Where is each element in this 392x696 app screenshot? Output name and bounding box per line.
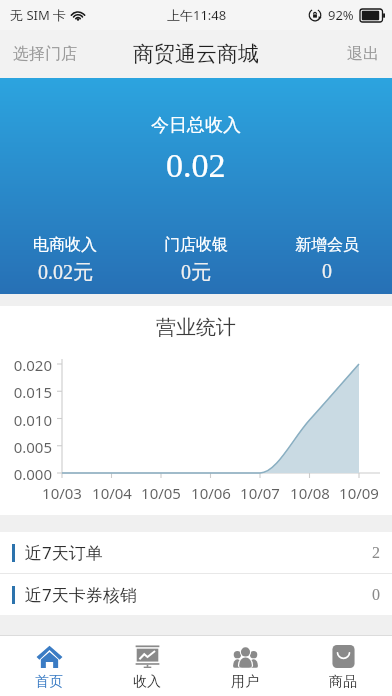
staticText: 收入 — [133, 673, 161, 691]
staticText: 近7天卡券核销 — [25, 583, 137, 606]
staticText: 营业统计 — [0, 315, 392, 340]
staticText: 今日总收入 — [151, 114, 241, 137]
staticText: 2 — [372, 544, 380, 562]
staticText: 0.000 — [0, 464, 52, 484]
button[interactable]: Home — [0, 636, 98, 696]
staticText: 0.005 — [0, 437, 52, 457]
staticText: 92% — [328, 6, 354, 24]
button[interactable]: Products — [294, 636, 392, 696]
button[interactable]: 门店收银 — [130, 235, 261, 285]
staticText: 商贸通云商城 — [133, 41, 259, 67]
staticText: 10/06 — [186, 483, 236, 503]
staticText: 无 SIM 卡 — [10, 6, 67, 24]
staticText: 电商收入 — [33, 235, 97, 255]
staticText: 0.020 — [0, 355, 52, 375]
staticText: 新增会员 — [295, 235, 359, 255]
staticText: 10/08 — [285, 483, 335, 503]
staticText: 10/07 — [235, 483, 285, 503]
staticText: 10/09 — [334, 483, 384, 503]
staticText: 0.02元 — [38, 260, 93, 285]
button[interactable]: 新增会员 — [261, 235, 392, 282]
staticText: 10/05 — [136, 483, 186, 503]
staticText: 首页 — [35, 673, 63, 691]
staticText: 0 — [372, 586, 380, 604]
staticText: 0 — [322, 260, 332, 282]
staticText: 商品 — [329, 673, 357, 691]
staticText: 10/03 — [37, 483, 87, 503]
button[interactable]: 选择门店 — [0, 34, 90, 74]
staticText: 上午11:48 — [167, 6, 227, 24]
button[interactable]: Users — [196, 636, 294, 696]
staticText: 0元 — [181, 260, 211, 285]
button[interactable]: 电商收入 — [0, 235, 130, 285]
staticText: 10/04 — [87, 483, 137, 503]
staticText: 用户 — [231, 673, 259, 691]
staticText: 近7天订单 — [25, 541, 103, 564]
staticText: 0.015 — [0, 382, 52, 402]
button[interactable]: 近7天订单 — [0, 532, 392, 573]
staticText: 0.02 — [166, 147, 226, 185]
staticText: 退出 — [347, 44, 379, 64]
button[interactable]: Income — [98, 636, 196, 696]
button[interactable]: 近7天卡券核销 — [0, 574, 392, 615]
button[interactable]: 退出 — [334, 34, 392, 74]
staticText: 门店收银 — [164, 235, 228, 255]
staticText: 0.010 — [0, 410, 52, 430]
staticText: 选择门店 — [13, 44, 77, 64]
